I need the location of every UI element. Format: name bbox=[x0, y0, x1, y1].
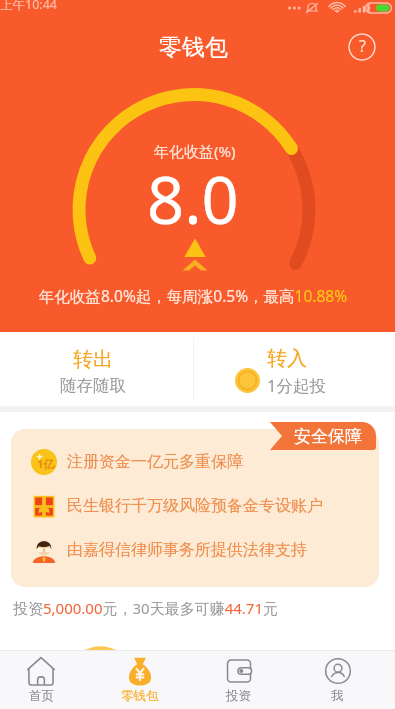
staticText: 零钱包 bbox=[121, 688, 159, 704]
button[interactable]: 投资 bbox=[189, 651, 288, 709]
button[interactable]: 转入 bbox=[198, 332, 395, 406]
staticText: 投资 bbox=[226, 688, 251, 704]
staticText: 年化收益8.0%起，每周涨0.5%，最高10.88% bbox=[39, 285, 348, 306]
staticText: 8.0 bbox=[147, 155, 239, 244]
staticText: 上午10:44 bbox=[0, 0, 57, 12]
staticText: 随存随取 bbox=[60, 375, 126, 396]
staticText: 1分起投 bbox=[267, 374, 326, 397]
staticText: 零钱包 bbox=[159, 33, 228, 62]
staticText: 民生银行千万级风险预备金专设账户 bbox=[67, 496, 323, 516]
staticText: 注册资金一亿元多重保障 bbox=[67, 452, 243, 472]
button[interactable]: 首页 bbox=[0, 651, 90, 709]
staticText: 首页 bbox=[29, 688, 54, 704]
button[interactable]: Help bbox=[348, 33, 376, 61]
staticText: 转出 bbox=[73, 347, 113, 372]
button[interactable]: 转出 bbox=[0, 332, 197, 406]
staticText: 年化收益(%) bbox=[154, 141, 236, 161]
button[interactable]: 1亿 bbox=[11, 429, 379, 587]
staticText: 由嘉得信律师事务所提供法律支持 bbox=[67, 540, 307, 560]
staticText: 转入 bbox=[267, 346, 307, 371]
staticText: ? bbox=[359, 35, 366, 57]
button[interactable]: 安全保障 bbox=[270, 422, 376, 450]
button[interactable]: 零钱包 bbox=[90, 651, 189, 709]
staticText: 投资5,000.00元，30天最多可赚44.71元 bbox=[13, 598, 279, 618]
button[interactable]: 我 bbox=[288, 651, 387, 709]
staticText: 安全保障 bbox=[294, 426, 362, 447]
staticText: 1亿 bbox=[37, 456, 55, 471]
staticText: 我 bbox=[331, 688, 344, 704]
